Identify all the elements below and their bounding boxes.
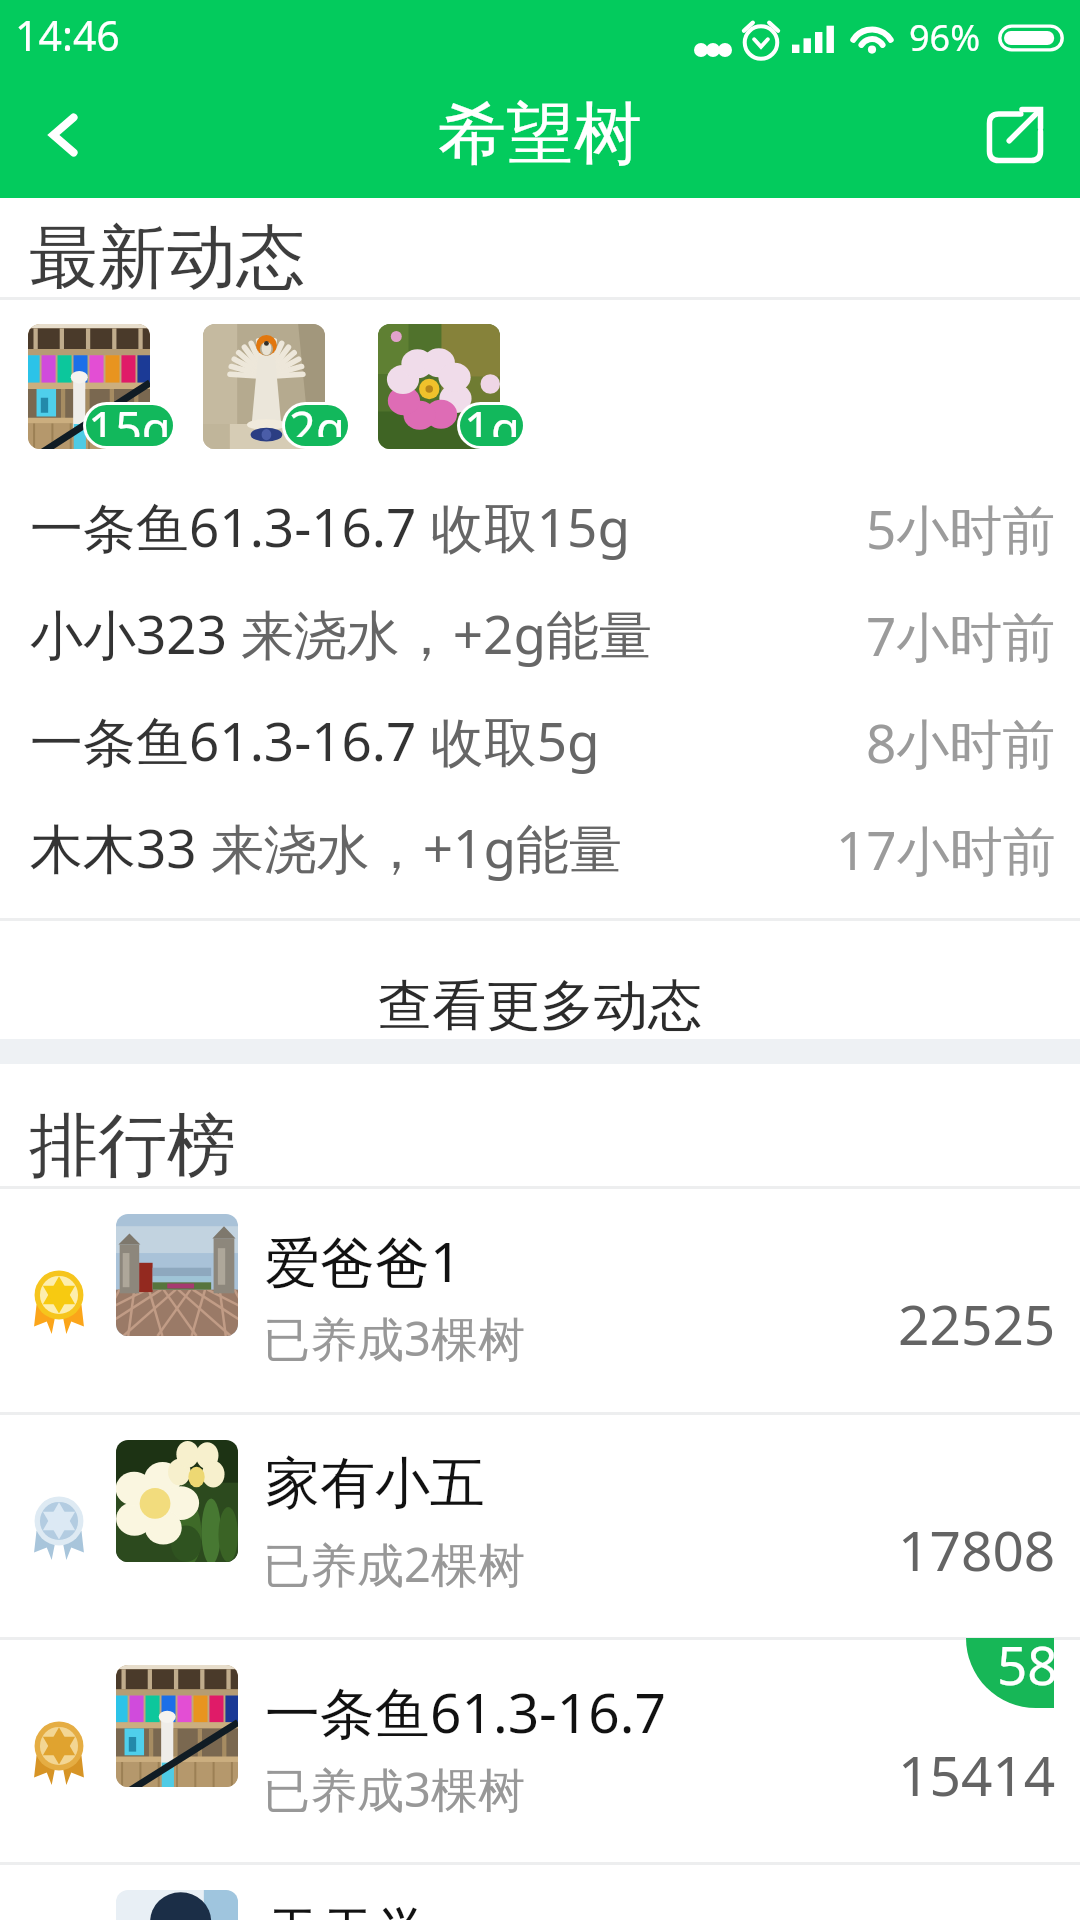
button[interactable]: 一条鱼61.3-16.7 xyxy=(0,688,1080,795)
staticText: 一条鱼61.3-16.7 xyxy=(265,1674,666,1749)
staticText: 22525 xyxy=(898,1286,1056,1361)
staticText: 天天学 xyxy=(265,1899,430,1920)
button[interactable] xyxy=(378,324,500,449)
staticText: 5小时前 xyxy=(866,492,1056,564)
staticText: 15g xyxy=(88,405,171,437)
staticText: 来浇水，+2g能量 xyxy=(227,597,653,669)
staticText: 2g xyxy=(289,405,345,437)
staticText: 收取15g xyxy=(417,490,631,562)
staticText: 已养成3棵树 xyxy=(263,1757,525,1821)
staticText: 家有小五 xyxy=(265,1449,485,1518)
button[interactable]: Share xyxy=(950,72,1080,198)
staticText: 一条鱼61.3-16.7 xyxy=(30,490,417,562)
button[interactable] xyxy=(203,324,325,449)
staticText: 17808 xyxy=(898,1512,1056,1587)
staticText: 已养成3棵树 xyxy=(263,1306,525,1370)
staticText: 1g xyxy=(464,405,520,437)
button[interactable]: 查看更多动态 xyxy=(0,921,1080,1039)
button[interactable]: 小小323 xyxy=(0,581,1080,688)
staticText: 来浇水，+1g能量 xyxy=(197,811,623,883)
button[interactable]: 家有小五 xyxy=(0,1412,1080,1638)
staticText: 17小时前 xyxy=(836,813,1056,885)
staticText: 14:46 xyxy=(15,7,120,63)
staticText: 15414 xyxy=(898,1737,1056,1812)
staticText: 小小323 xyxy=(30,597,227,669)
staticText: 收取5g xyxy=(417,704,600,776)
staticText: 8小时前 xyxy=(866,706,1056,778)
staticText: 一条鱼61.3-16.7 xyxy=(30,704,417,776)
staticText: 已养成2棵树 xyxy=(263,1532,525,1596)
button[interactable]: Back xyxy=(0,72,130,198)
staticText: 96% xyxy=(909,13,981,62)
button[interactable] xyxy=(28,324,150,449)
button[interactable]: 一条鱼61.3-16.7 xyxy=(0,474,1080,581)
staticText: 最新动态 xyxy=(29,215,305,302)
staticText: 爱爸爸1 xyxy=(265,1223,462,1298)
button[interactable]: 一条鱼61.3-16.7 xyxy=(0,1637,1080,1863)
staticText: 查看更多动态 xyxy=(378,972,702,1040)
button[interactable]: 木木33 xyxy=(0,795,1080,902)
staticText: 58 xyxy=(997,1638,1054,1698)
staticText: 希望树 xyxy=(438,92,642,178)
button[interactable]: 天天学 xyxy=(0,1862,1080,1920)
staticText: 7小时前 xyxy=(866,599,1056,671)
staticText: 排行榜 xyxy=(29,1103,236,1190)
button[interactable]: 爱爸爸1 xyxy=(0,1186,1080,1412)
staticText: 木木33 xyxy=(30,811,197,883)
